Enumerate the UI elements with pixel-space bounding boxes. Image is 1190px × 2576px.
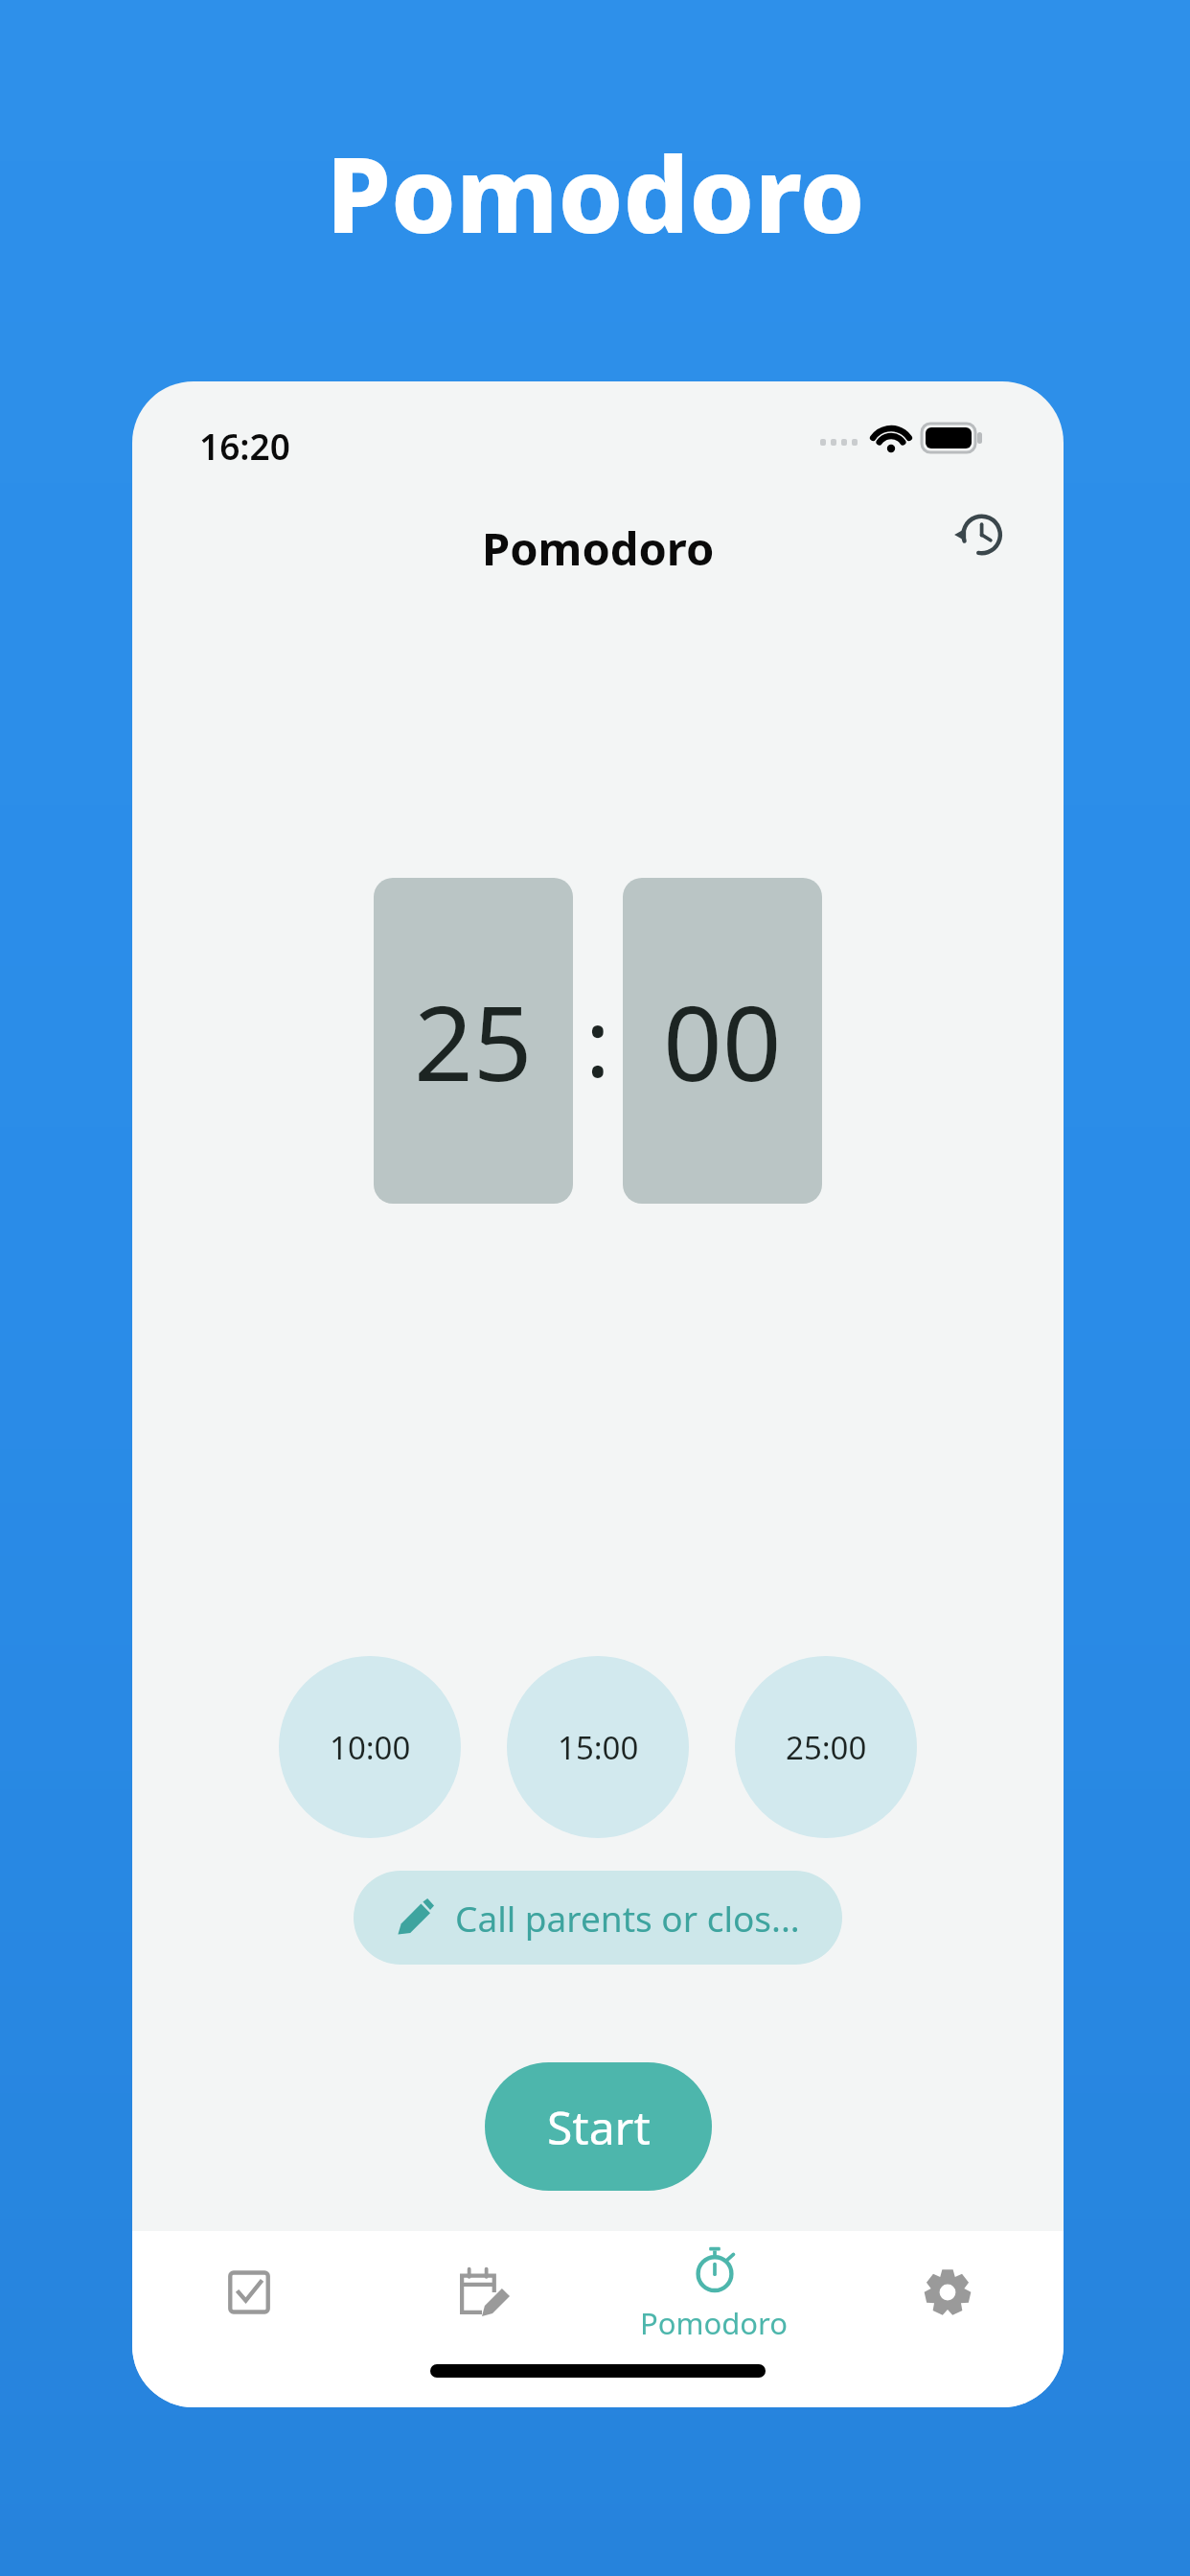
staticText: 16:20 bbox=[199, 422, 290, 470]
staticText: Start bbox=[547, 2096, 651, 2158]
button[interactable]: Start bbox=[485, 2062, 712, 2191]
button[interactable]: 15:00 bbox=[507, 1656, 689, 1838]
staticText: Pomodoro bbox=[640, 2303, 789, 2343]
button[interactable]: 25:00 bbox=[735, 1656, 917, 1838]
button[interactable]: Pomodoro bbox=[598, 2231, 831, 2354]
button[interactable]: Tasks bbox=[132, 2231, 365, 2354]
button[interactable]: 00 bbox=[623, 878, 822, 1204]
button[interactable]: Settings bbox=[831, 2231, 1064, 2354]
staticText: 00 bbox=[663, 971, 782, 1112]
staticText: Call parents or clos... bbox=[455, 1894, 800, 1942]
staticText: 15:00 bbox=[558, 1726, 639, 1769]
staticText: : bbox=[585, 978, 610, 1104]
staticText: 25:00 bbox=[786, 1726, 867, 1769]
staticText: 25 bbox=[414, 971, 533, 1112]
staticText: Pomodoro bbox=[326, 123, 865, 264]
button[interactable]: 25 bbox=[374, 878, 573, 1204]
staticText: 10:00 bbox=[330, 1726, 411, 1769]
button[interactable]: Planner bbox=[365, 2231, 598, 2354]
staticText: Pomodoro bbox=[482, 517, 715, 579]
button[interactable]: History bbox=[933, 489, 1025, 581]
button[interactable]: 10:00 bbox=[279, 1656, 461, 1838]
button[interactable]: Call parents or clos... bbox=[354, 1871, 842, 1965]
